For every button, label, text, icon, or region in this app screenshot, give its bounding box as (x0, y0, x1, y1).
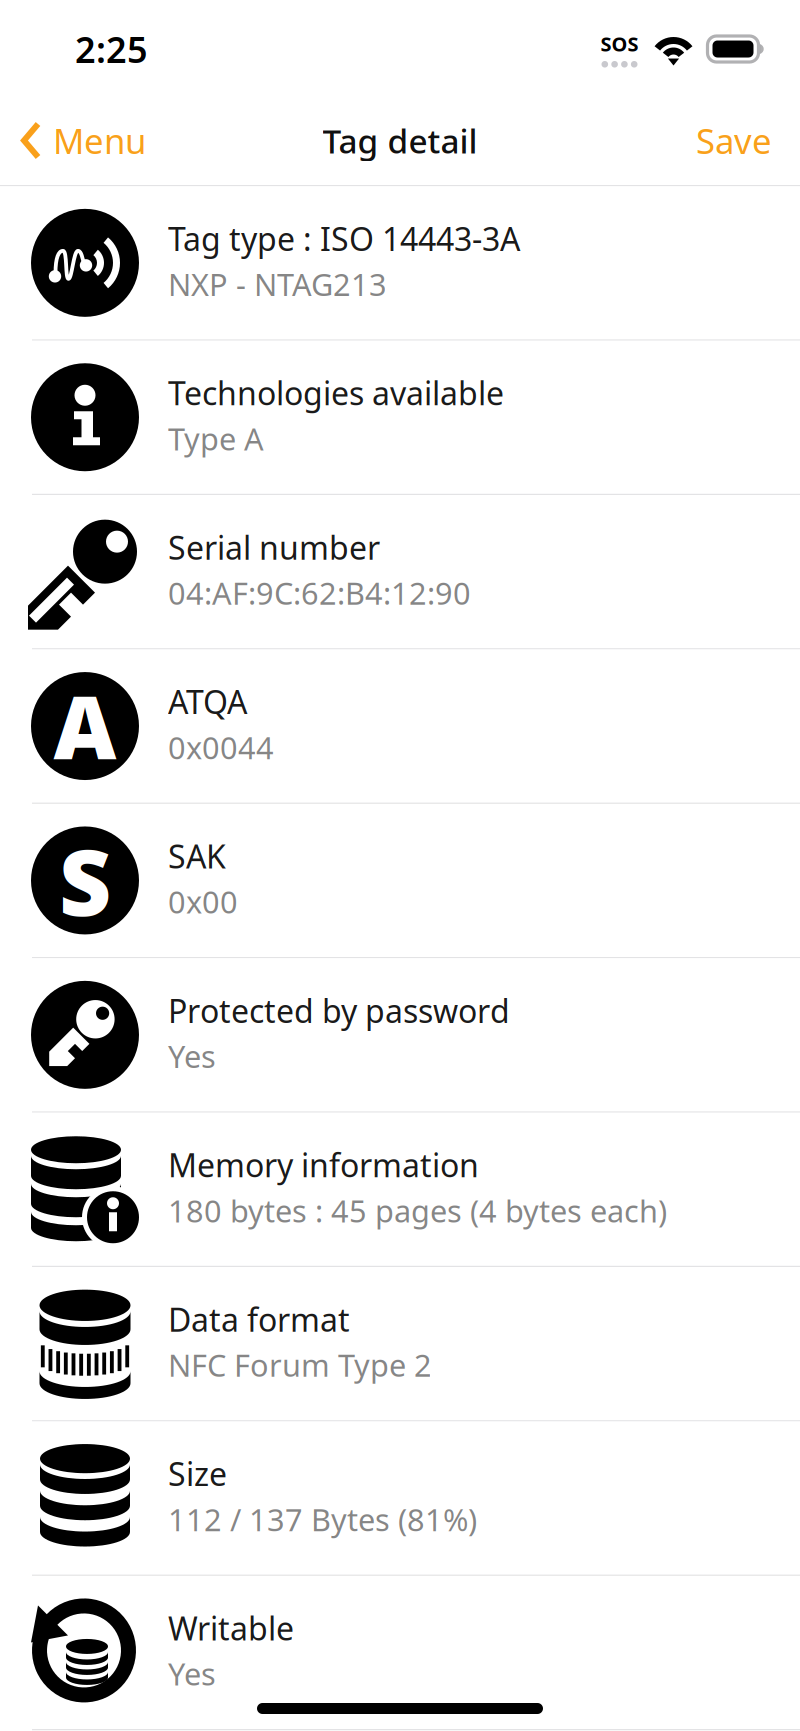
staticText: SAK (168, 835, 226, 877)
staticText: 0x00 (168, 881, 238, 922)
button[interactable]: Serial number (0, 495, 800, 649)
staticText: Yes (168, 1653, 216, 1694)
staticText: Protected by password (168, 989, 510, 1032)
staticText: A (53, 668, 116, 784)
button[interactable]: Size (0, 1421, 800, 1576)
button[interactable]: Protected by password (0, 958, 800, 1113)
staticText: Size (168, 1452, 227, 1495)
staticText: 2:25 (75, 25, 148, 73)
staticText: Save (696, 117, 772, 163)
staticText: ATQA (168, 680, 247, 723)
button[interactable]: Tag type : ISO 14443-3A (0, 186, 800, 341)
staticText: Writable (168, 1607, 294, 1649)
staticText: 0x0044 (168, 727, 274, 768)
staticText: Tag detail (322, 118, 477, 163)
staticText: NXP - NTAG213 (168, 264, 387, 304)
staticText: 180 bytes : 45 pages (4 bytes each) (168, 1190, 667, 1231)
staticText: Yes (168, 1036, 216, 1076)
button[interactable]: A (0, 649, 800, 804)
staticText: Type A (168, 418, 264, 459)
staticText: Data format (168, 1298, 350, 1340)
button[interactable]: Writable (0, 1576, 800, 1730)
button[interactable]: Technologies available (0, 341, 800, 495)
staticText: Menu (53, 117, 146, 163)
staticText: 112 / 137 Bytes (81%) (168, 1499, 477, 1540)
staticText: NFC Forum Type 2 (168, 1344, 432, 1385)
staticText: SOS (600, 30, 638, 57)
staticText: Memory information (168, 1144, 479, 1186)
button[interactable]: Save (674, 101, 794, 179)
button[interactable]: Data format (0, 1267, 800, 1421)
staticText: Technologies available (168, 372, 504, 414)
staticText: Serial number (168, 526, 380, 568)
button[interactable]: S (0, 804, 800, 958)
button[interactable]: Memory information (0, 1113, 800, 1267)
staticText: 04:AF:9C:62:B4:12:90 (168, 572, 471, 613)
staticText: Tag type : ISO 14443-3A (168, 217, 520, 260)
staticText: S (59, 820, 111, 941)
button[interactable]: Menu (6, 101, 160, 179)
